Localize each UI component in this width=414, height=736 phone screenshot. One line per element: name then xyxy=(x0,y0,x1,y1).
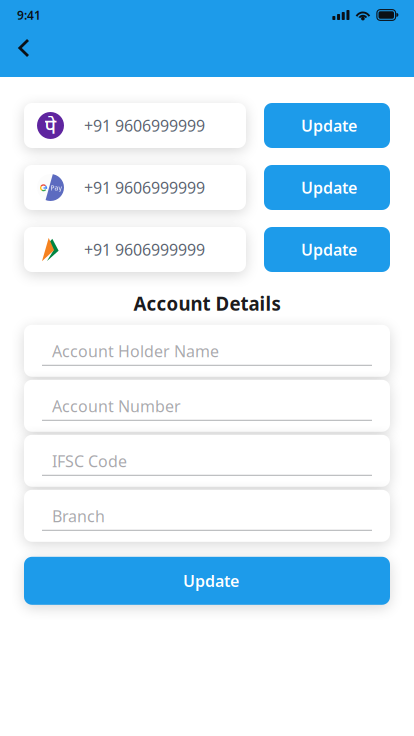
staticText: पे xyxy=(44,113,56,139)
staticText: Account Details xyxy=(133,291,280,316)
staticText: Update xyxy=(301,115,357,136)
staticText: Branch xyxy=(52,505,105,527)
button[interactable]: Account Number xyxy=(24,380,390,432)
button[interactable]: Account Holder Name xyxy=(24,325,390,377)
button[interactable]: IFSC Code xyxy=(24,435,390,487)
staticText: +91 9606999999 xyxy=(84,177,205,198)
staticText: Update xyxy=(301,177,357,198)
button[interactable]: Back xyxy=(6,30,42,66)
staticText: Account Number xyxy=(52,395,181,417)
staticText: Update xyxy=(183,570,239,591)
staticText: +91 9606999999 xyxy=(84,239,205,260)
button[interactable]: +91 9606999999 xyxy=(24,227,246,272)
staticText: Update xyxy=(301,239,357,260)
button[interactable]: Update xyxy=(24,557,390,605)
staticText: Pay xyxy=(50,183,61,192)
button[interactable]: Update xyxy=(264,165,390,210)
staticText: 9:41 xyxy=(17,7,41,23)
button[interactable]: पे xyxy=(24,103,246,148)
button[interactable]: Update xyxy=(264,103,390,148)
staticText: +91 9606999999 xyxy=(84,115,205,136)
button[interactable]: Update xyxy=(264,227,390,272)
staticText: IFSC Code xyxy=(52,450,127,472)
button[interactable]: Pay xyxy=(24,165,246,210)
staticText: Account Holder Name xyxy=(52,340,219,362)
button[interactable]: Branch xyxy=(24,490,390,542)
